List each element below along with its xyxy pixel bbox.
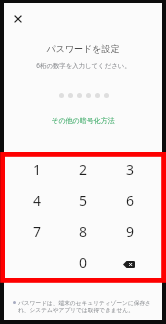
staticText: パスワードは、端末のセキュリティゾーンに保存さ <box>18 300 151 307</box>
staticText: れ、システムやアプリでは取得できません。 <box>18 307 134 314</box>
button[interactable]: 8 <box>60 216 107 247</box>
staticText: 4 <box>33 191 42 210</box>
staticText: 9 <box>126 222 135 241</box>
staticText: 2 <box>79 160 88 179</box>
staticText: その他の暗号化方法 <box>51 116 115 125</box>
button[interactable]: 7 <box>14 216 60 247</box>
button[interactable]: その他の暗号化方法 <box>45 113 121 128</box>
other: Backspace <box>123 261 135 268</box>
staticText: 5 <box>79 191 88 210</box>
button[interactable]: 1 <box>14 154 60 185</box>
button[interactable]: Backspace <box>107 247 154 278</box>
button[interactable]: 5 <box>60 185 107 216</box>
staticText: 3 <box>126 160 135 179</box>
button[interactable]: 2 <box>60 154 107 185</box>
button[interactable]: 4 <box>14 185 60 216</box>
button[interactable]: 0 <box>60 247 107 278</box>
staticText: 6 <box>126 191 135 210</box>
staticText: パスワードを設定 <box>46 43 120 54</box>
staticText: 0 <box>79 253 88 272</box>
staticText: 7 <box>33 222 42 241</box>
button[interactable]: Close <box>6 7 29 30</box>
staticText: 8 <box>79 222 88 241</box>
staticText: 6桁の数字を入力してください。 <box>36 61 131 70</box>
button[interactable]: 3 <box>107 154 154 185</box>
button[interactable]: 6 <box>107 185 154 216</box>
staticText: 1 <box>33 160 42 179</box>
button[interactable]: 9 <box>107 216 154 247</box>
